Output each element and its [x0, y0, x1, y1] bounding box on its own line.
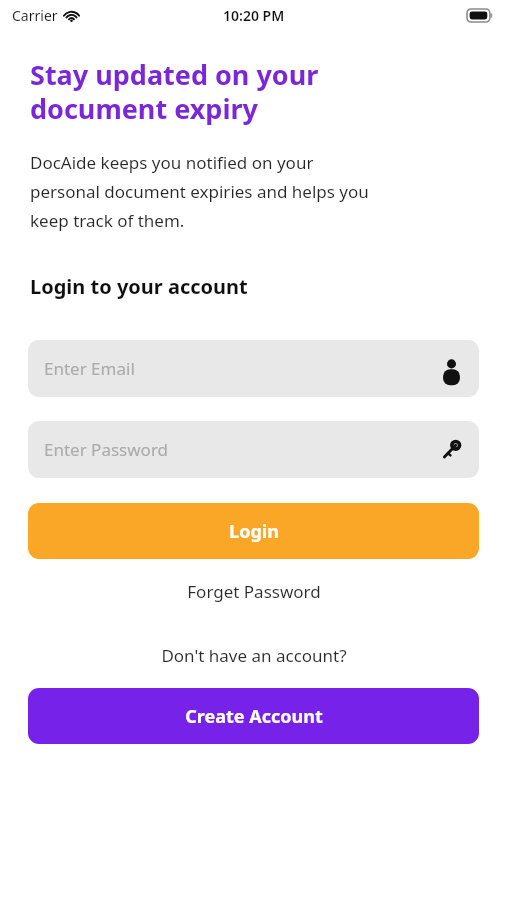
staticText: Carrier — [12, 6, 58, 25]
button[interactable]: Email input field — [28, 340, 479, 397]
button[interactable]: Create Account — [28, 688, 479, 744]
staticText: Enter Password — [44, 438, 169, 461]
staticText: Stay updated on your document expiry — [30, 56, 319, 127]
staticText: Forget Password — [187, 580, 321, 603]
staticText: 10:20 PM — [223, 6, 285, 25]
staticText: DocAide keeps you notified on your perso… — [30, 151, 369, 232]
staticText: Login — [229, 519, 279, 544]
staticText: Create Account — [185, 704, 323, 729]
button[interactable]: Password input field — [28, 421, 479, 478]
staticText: Don't have an account? — [161, 644, 347, 667]
button[interactable]: Login — [28, 503, 479, 559]
button[interactable]: Forget Password — [0, 573, 507, 610]
staticText: Enter Email — [44, 357, 135, 380]
staticText: Login to your account — [30, 273, 248, 300]
